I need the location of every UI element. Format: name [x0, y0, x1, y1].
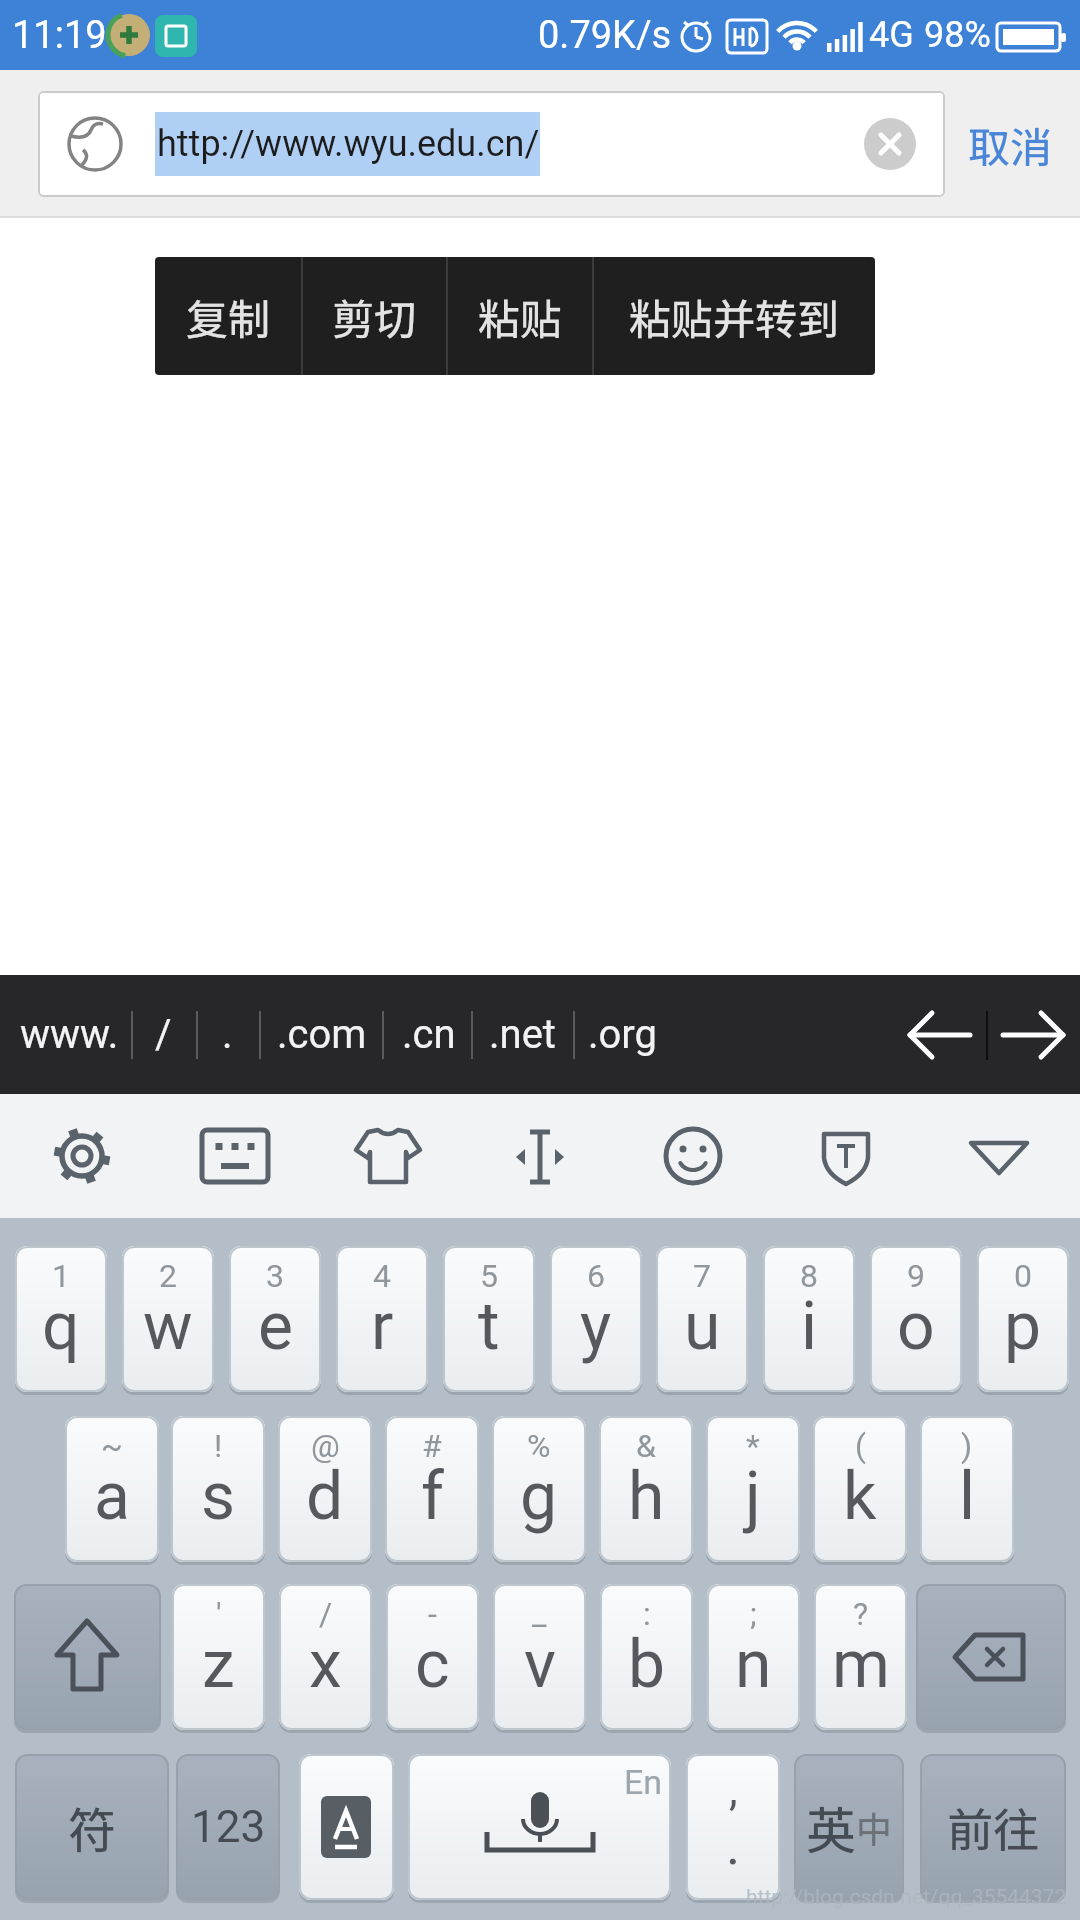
button[interactable]: .net — [484, 975, 560, 1094]
button[interactable]: & — [599, 1416, 693, 1562]
staticText: ! — [214, 1427, 223, 1465]
staticText: ? — [853, 1595, 869, 1633]
button[interactable] — [992, 975, 1080, 1094]
button[interactable]: / — [138, 975, 188, 1094]
staticText: 0 — [1014, 1257, 1032, 1295]
button[interactable]: 复制 — [155, 257, 301, 375]
staticText: 11:19 — [12, 13, 107, 58]
staticText: ' — [216, 1595, 222, 1633]
button[interactable]: 粘贴 — [448, 257, 592, 375]
button[interactable]: 英 — [794, 1754, 904, 1900]
staticText: . — [222, 1011, 233, 1058]
button[interactable]: - — [386, 1584, 479, 1730]
button[interactable]: # — [385, 1416, 479, 1562]
button[interactable]: 6 — [550, 1246, 642, 1392]
staticText: y — [580, 1288, 612, 1365]
button[interactable]: ' — [172, 1584, 265, 1730]
button[interactable] — [864, 118, 916, 170]
staticText: p — [1004, 1288, 1042, 1365]
staticText: # — [422, 1427, 442, 1465]
button[interactable]: ? — [814, 1584, 907, 1730]
staticText: q — [42, 1288, 80, 1365]
staticText: a — [94, 1458, 130, 1535]
staticText: . — [726, 1814, 741, 1877]
staticText: t — [478, 1288, 500, 1365]
staticText: 7 — [693, 1257, 711, 1295]
staticText: : — [643, 1595, 651, 1633]
button[interactable]: 取消 — [950, 91, 1070, 197]
button[interactable]: 1 — [15, 1246, 107, 1392]
button[interactable] — [38, 91, 945, 197]
button[interactable] — [638, 1104, 748, 1208]
staticText: 粘贴 — [478, 286, 563, 347]
button[interactable]: @ — [278, 1416, 372, 1562]
button[interactable]: 123 — [176, 1754, 280, 1900]
button[interactable]: .cn — [396, 975, 462, 1094]
staticText: 123 — [191, 1801, 266, 1853]
button[interactable]: ( — [813, 1416, 907, 1562]
button[interactable] — [900, 975, 984, 1094]
button[interactable]: 前往 — [920, 1754, 1066, 1900]
staticText: @ — [311, 1427, 340, 1465]
button[interactable] — [916, 1584, 1066, 1730]
staticText: f — [421, 1458, 444, 1535]
staticText: 0.79K/s — [538, 13, 672, 58]
button[interactable]: 8 — [763, 1246, 855, 1392]
button[interactable] — [27, 1104, 137, 1208]
button[interactable]: www. — [19, 975, 119, 1094]
button[interactable] — [944, 1104, 1054, 1208]
staticText: www. — [20, 1011, 119, 1058]
button[interactable]: En — [408, 1754, 671, 1900]
button[interactable]: ! — [171, 1416, 265, 1562]
button[interactable]: 4 — [336, 1246, 428, 1392]
staticText: 2 — [159, 1257, 177, 1295]
button[interactable]: 7 — [656, 1246, 748, 1392]
staticText: 4G — [869, 14, 914, 56]
button[interactable]: ; — [707, 1584, 800, 1730]
button[interactable] — [485, 1104, 595, 1208]
staticText: ( — [855, 1427, 866, 1465]
staticText: .org — [588, 1011, 658, 1058]
button[interactable]: ~ — [65, 1416, 159, 1562]
button[interactable]: 0 — [977, 1246, 1069, 1392]
button[interactable] — [333, 1104, 443, 1208]
button[interactable]: .com — [272, 975, 372, 1094]
button[interactable]: 9 — [870, 1246, 962, 1392]
button[interactable]: / — [279, 1584, 372, 1730]
button[interactable]: _ — [493, 1584, 586, 1730]
staticText: u — [684, 1288, 721, 1365]
button[interactable] — [299, 1754, 394, 1900]
button[interactable]: % — [492, 1416, 586, 1562]
staticText: r — [371, 1288, 394, 1365]
staticText: 98% — [924, 14, 991, 56]
staticText: 3 — [266, 1257, 284, 1295]
button[interactable] — [791, 1104, 901, 1208]
button[interactable]: ) — [920, 1416, 1014, 1562]
staticText: 粘贴并转到 — [629, 286, 840, 347]
button[interactable]: 3 — [229, 1246, 321, 1392]
button[interactable]: 剪切 — [303, 257, 446, 375]
staticText: 复制 — [186, 286, 271, 347]
button[interactable] — [14, 1584, 161, 1730]
staticText: x — [309, 1626, 342, 1703]
staticText: ) — [961, 1427, 973, 1465]
staticText: http://www.wyu.edu.cn/ — [157, 123, 540, 165]
staticText: l — [959, 1458, 976, 1535]
staticText: 英 — [806, 1791, 856, 1863]
button[interactable]: . — [202, 975, 252, 1094]
button[interactable]: : — [600, 1584, 693, 1730]
button[interactable]: 5 — [443, 1246, 535, 1392]
staticText: .com — [277, 1011, 367, 1058]
staticText: w — [143, 1288, 193, 1365]
button[interactable] — [180, 1104, 290, 1208]
button[interactable]: .org — [585, 975, 661, 1094]
staticText: 前往 — [947, 1794, 1039, 1861]
staticText: * — [746, 1427, 760, 1465]
staticText: , — [729, 1764, 738, 1816]
staticText: j — [745, 1458, 761, 1535]
button[interactable]: 粘贴并转到 — [594, 257, 875, 375]
button[interactable]: * — [706, 1416, 800, 1562]
button[interactable]: , — [686, 1754, 780, 1900]
button[interactable]: 符 — [15, 1754, 169, 1900]
button[interactable]: 2 — [122, 1246, 214, 1392]
